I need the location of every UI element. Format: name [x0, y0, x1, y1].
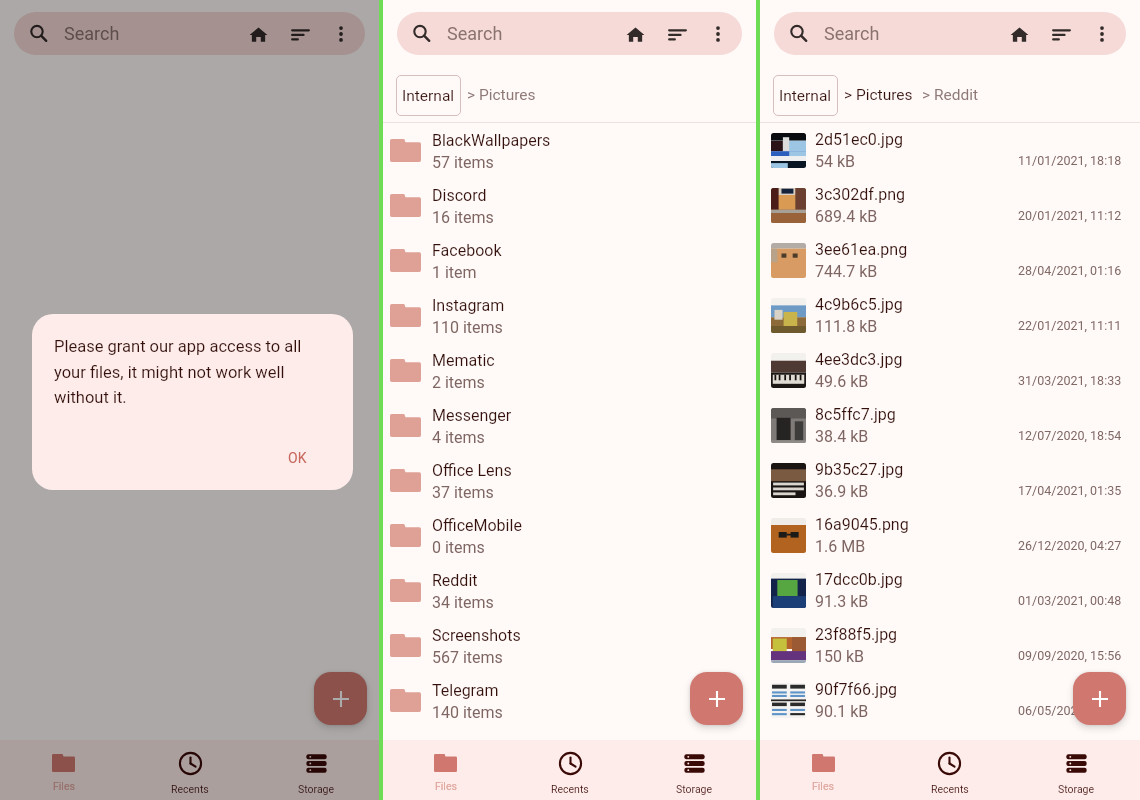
staticText: 2d51ec0.jpg — [815, 130, 903, 149]
staticText: 01/03/2021, 00:48 — [1018, 593, 1122, 608]
other: Search — [789, 24, 808, 43]
staticText: 17/04/2021, 01:35 — [1018, 483, 1122, 498]
button[interactable]: Sort — [660, 17, 694, 51]
button[interactable]: Home — [618, 17, 652, 51]
staticText: 20/01/2021, 11:12 — [1018, 208, 1122, 223]
button[interactable]: Messenger — [383, 398, 756, 453]
button[interactable]: Sort — [1044, 17, 1078, 51]
button[interactable]: OK — [268, 436, 353, 490]
button[interactable]: Telegram — [383, 673, 756, 728]
staticText: Instagram — [432, 296, 505, 315]
button[interactable]: BlackWallpapers — [383, 123, 756, 178]
staticText: 3ee61ea.png — [815, 240, 908, 259]
staticText: 06/05/2021, 14:02 — [1018, 703, 1122, 718]
button[interactable]: Mematic — [383, 343, 756, 398]
staticText: 23f88f5.jpg — [815, 625, 898, 644]
button[interactable]: 90f7f66.jpg — [760, 673, 1140, 728]
button[interactable]: 16a9045.png — [760, 508, 1140, 563]
staticText: > Pictures — [467, 86, 536, 104]
staticText: OK — [288, 450, 307, 466]
button[interactable]: More options — [1085, 17, 1119, 51]
other: Search — [412, 24, 431, 43]
button[interactable]: Discord — [383, 178, 756, 233]
button[interactable]: Add — [314, 672, 367, 725]
staticText: Search — [824, 23, 880, 44]
staticText: 54 kB — [815, 152, 856, 171]
staticText: Files — [53, 780, 75, 792]
button[interactable]: Storage — [1013, 740, 1140, 800]
button[interactable]: Files — [0, 740, 127, 800]
staticText: 150 kB — [815, 647, 865, 666]
button[interactable]: Files — [760, 740, 886, 800]
button[interactable]: Internal — [773, 75, 838, 116]
staticText: 26/12/2020, 04:27 — [1018, 538, 1122, 553]
other: Search — [29, 24, 48, 43]
staticText: 38.4 kB — [815, 427, 869, 446]
button[interactable]: Storage — [253, 740, 379, 800]
staticText: 110 items — [432, 318, 503, 337]
button[interactable]: Internal — [396, 75, 461, 116]
staticText: 31/03/2021, 18:33 — [1018, 373, 1122, 388]
staticText: 57 items — [432, 153, 494, 172]
button[interactable]: Storage — [632, 740, 756, 800]
staticText: Screenshots — [432, 626, 521, 645]
button[interactable]: Reddit — [383, 563, 756, 618]
button[interactable]: OfficeMobile — [383, 508, 756, 563]
button[interactable]: Add — [1073, 672, 1126, 725]
staticText: > Pictures — [844, 86, 913, 104]
button[interactable]: Facebook — [383, 233, 756, 288]
button[interactable]: Screenshots — [383, 618, 756, 673]
button[interactable]: > Reddit — [922, 86, 979, 104]
staticText: Storage — [676, 783, 713, 795]
button[interactable]: 23f88f5.jpg — [760, 618, 1140, 673]
staticText: Telegram — [432, 681, 499, 700]
button[interactable]: > Pictures — [467, 86, 536, 104]
button[interactable]: Recents — [127, 740, 253, 800]
button[interactable]: Search — [14, 12, 365, 55]
button[interactable]: Instagram — [383, 288, 756, 343]
button[interactable]: 17dcc0b.jpg — [760, 563, 1140, 618]
staticText: Please grant our app access to all your … — [54, 337, 335, 407]
staticText: Discord — [432, 186, 487, 205]
button[interactable]: Sort — [283, 17, 317, 51]
staticText: 37 items — [432, 483, 494, 502]
staticText: > Reddit — [922, 86, 979, 104]
staticText: 744.7 kB — [815, 262, 878, 281]
button[interactable]: Add — [690, 672, 743, 725]
staticText: Storage — [1058, 783, 1095, 795]
button[interactable]: > Pictures — [844, 86, 913, 104]
staticText: 16 items — [432, 208, 494, 227]
button[interactable]: More options — [701, 17, 735, 51]
staticText: Storage — [298, 783, 335, 795]
button[interactable]: Office Lens — [383, 453, 756, 508]
staticText: Office Lens — [432, 461, 512, 480]
button[interactable]: Search — [397, 12, 742, 55]
button[interactable]: 3ee61ea.png — [760, 233, 1140, 288]
button[interactable]: 3c302df.png — [760, 178, 1140, 233]
staticText: 4c9b6c5.jpg — [815, 295, 903, 314]
button[interactable]: 4c9b6c5.jpg — [760, 288, 1140, 343]
button[interactable]: 9b35c27.jpg — [760, 453, 1140, 508]
button[interactable]: 2d51ec0.jpg — [760, 123, 1140, 178]
button[interactable]: More options — [324, 17, 358, 51]
button[interactable]: Recents — [886, 740, 1013, 800]
staticText: Search — [64, 23, 120, 44]
staticText: Files — [435, 780, 457, 792]
staticText: 4 items — [432, 428, 485, 447]
button[interactable]: Search — [774, 12, 1126, 55]
staticText: 17dcc0b.jpg — [815, 570, 903, 589]
button[interactable]: 8c5ffc7.jpg — [760, 398, 1140, 453]
button[interactable]: Recents — [508, 740, 632, 800]
button[interactable]: Home — [1002, 17, 1036, 51]
button[interactable]: Home — [241, 17, 275, 51]
staticText: 09/09/2020, 15:56 — [1018, 648, 1122, 663]
staticText: 28/04/2021, 01:16 — [1018, 263, 1122, 278]
button[interactable]: 4ee3dc3.jpg — [760, 343, 1140, 398]
staticText: 9b35c27.jpg — [815, 460, 904, 479]
button[interactable]: Files — [383, 740, 508, 800]
staticText: Recents — [551, 783, 589, 795]
staticText: Internal — [779, 87, 832, 105]
staticText: 22/01/2021, 11:11 — [1018, 318, 1122, 333]
staticText: 8c5ffc7.jpg — [815, 405, 896, 424]
staticText: Facebook — [432, 241, 502, 260]
